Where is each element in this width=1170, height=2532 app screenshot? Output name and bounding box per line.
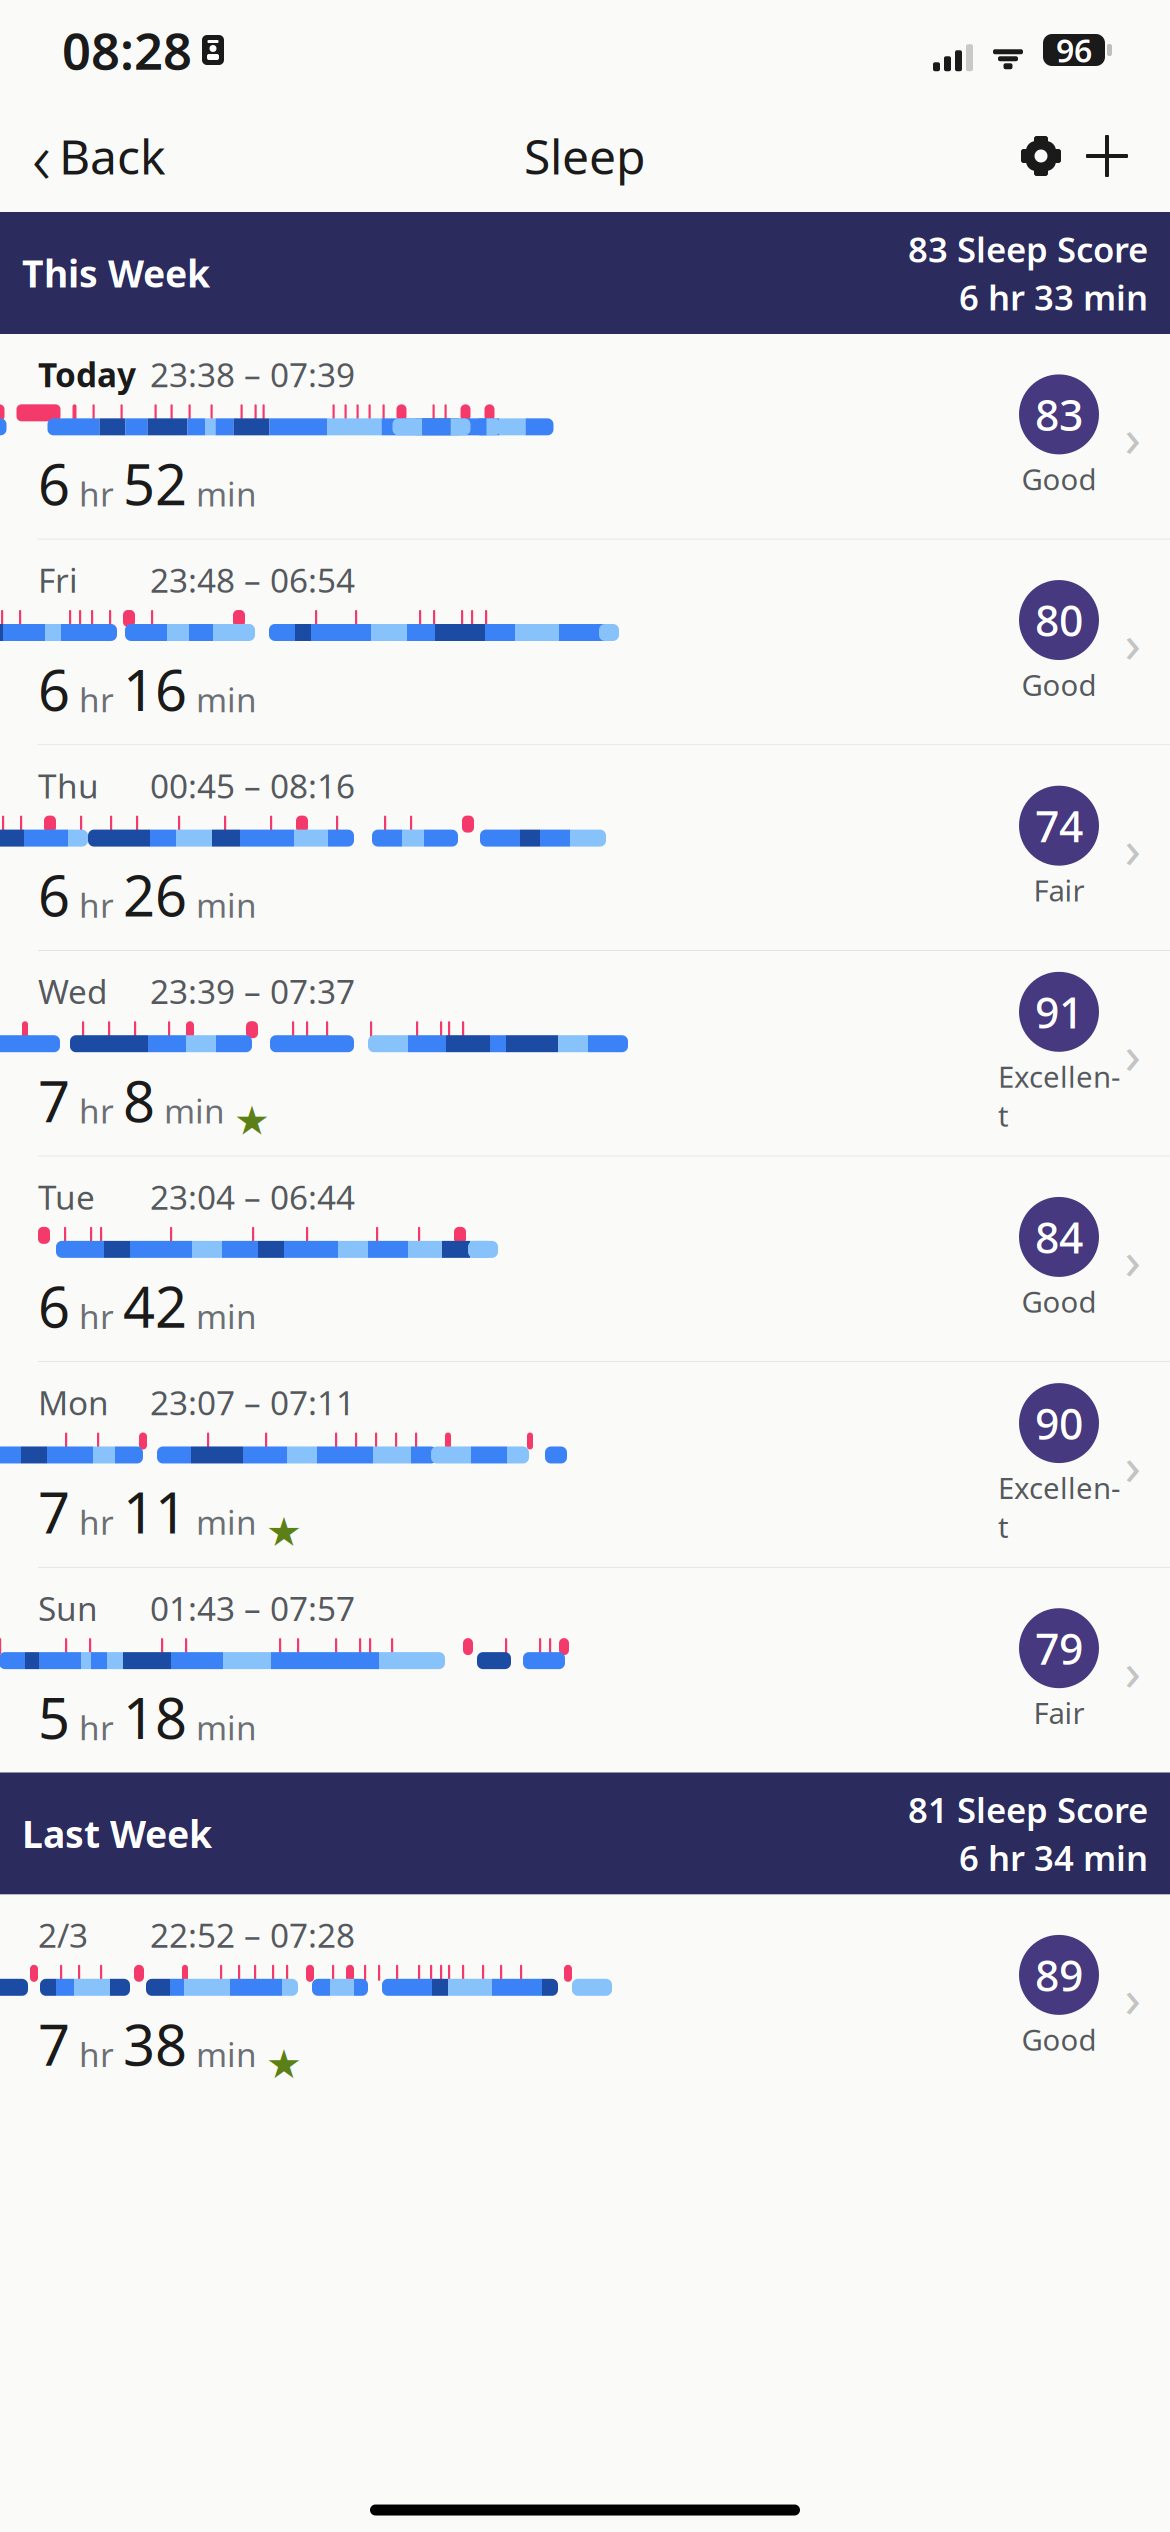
button[interactable]: Add sleep entry [1074, 123, 1140, 189]
staticText: › [1124, 1018, 1141, 1089]
staticText: 23:38 – 07:39 [150, 352, 355, 396]
staticText: 00:45 – 08:16 [150, 763, 355, 808]
staticText: 2/3 [38, 1913, 88, 1957]
staticText: 80 [1035, 592, 1083, 648]
staticText: hr [70, 1705, 123, 1749]
staticText: Excellent [998, 1468, 1120, 1546]
staticText: 74 [1035, 797, 1083, 854]
staticText: 23:48 – 06:54 [150, 558, 355, 602]
staticText: Wed [38, 969, 108, 1013]
staticText: Good [1021, 1282, 1096, 1321]
button[interactable]: Tue [0, 1157, 1170, 1362]
staticText: › [1124, 1635, 1141, 1706]
staticText: 01:43 – 07:57 [150, 1586, 355, 1630]
staticText: › [1124, 1961, 1141, 2032]
staticText: hr [70, 1500, 123, 1544]
staticText: Sun [38, 1586, 98, 1630]
staticText: 81 Sleep Score [908, 1786, 1148, 1832]
staticText: 08:28 [62, 16, 192, 84]
button[interactable]: 2/3 [0, 1895, 1170, 2099]
staticText: ★ [266, 2041, 302, 2087]
staticText: Back [59, 124, 166, 188]
staticText: Fair [1033, 1693, 1084, 1732]
staticText: min [155, 1088, 225, 1133]
staticText: 79 [1035, 1620, 1083, 1677]
staticText: 83 [1035, 386, 1083, 443]
staticText: min [187, 1294, 257, 1338]
button[interactable]: ‹ [22, 102, 176, 210]
staticText: hr [70, 471, 123, 516]
staticText: min [187, 677, 257, 721]
button[interactable]: Mon [0, 1362, 1170, 1568]
staticText: 23:04 – 06:44 [150, 1175, 355, 1219]
staticText: 90 [1035, 1395, 1083, 1451]
staticText: hr [70, 2032, 123, 2076]
staticText: This Week [22, 248, 210, 298]
button[interactable]: Today [0, 334, 1170, 540]
staticText: 7 [38, 1063, 70, 1138]
button[interactable]: Settings [1008, 123, 1074, 189]
staticText: 83 Sleep Score [908, 226, 1148, 272]
staticText: 52 [123, 446, 187, 521]
staticText: Good [1021, 2020, 1096, 2059]
staticText: hr [70, 883, 123, 927]
staticText: min [187, 1705, 257, 1749]
staticText: Excellent [998, 1057, 1120, 1135]
staticText: min [187, 883, 257, 927]
button[interactable]: Fri [0, 540, 1170, 745]
staticText: Good [1021, 665, 1096, 704]
staticText: hr [70, 1294, 123, 1338]
staticText: 6 [38, 652, 70, 726]
staticText: 6 [38, 1269, 70, 1343]
staticText: Last Week [22, 1809, 212, 1858]
staticText: › [1124, 1223, 1141, 1294]
staticText: hr [70, 677, 123, 721]
staticText: 23:07 – 07:11 [150, 1380, 355, 1424]
button[interactable]: Sun [0, 1568, 1170, 1772]
staticText: Mon [38, 1380, 109, 1424]
staticText: Thu [38, 763, 99, 808]
staticText: 11 [123, 1474, 187, 1549]
staticText: Good [1021, 459, 1096, 498]
staticText: 7 [38, 2007, 70, 2081]
staticText: hr [70, 1088, 123, 1133]
staticText: 6 [38, 858, 70, 932]
staticText: 91 [1035, 983, 1083, 1040]
staticText: 6 hr 33 min [959, 274, 1148, 320]
staticText: 23:39 – 07:37 [150, 969, 355, 1013]
staticText: 26 [123, 858, 187, 932]
staticText: Fri [38, 558, 78, 602]
staticText: ★ [234, 1098, 270, 1143]
staticText: min [187, 471, 257, 516]
staticText: ★ [266, 1509, 302, 1555]
staticText: 8 [123, 1063, 155, 1138]
staticText: 38 [123, 2007, 187, 2081]
staticText: 16 [123, 652, 187, 726]
staticText: ‹ [32, 108, 51, 204]
staticText: 6 hr 34 min [959, 1834, 1148, 1880]
staticText: 96 [1056, 29, 1092, 71]
staticText: 5 [38, 1680, 70, 1754]
button[interactable]: Wed [0, 951, 1170, 1157]
staticText: 22:52 – 07:28 [150, 1913, 355, 1957]
staticText: › [1124, 1429, 1141, 1500]
staticText: Sleep [524, 124, 646, 188]
staticText: 6 [38, 446, 70, 521]
staticText: 84 [1035, 1209, 1083, 1265]
staticText: min [187, 2032, 257, 2076]
staticText: 42 [123, 1269, 187, 1343]
staticText: › [1124, 401, 1141, 472]
staticText: › [1124, 812, 1141, 883]
staticText: min [187, 1500, 257, 1544]
staticText: Fair [1033, 871, 1084, 910]
button[interactable]: Thu [0, 745, 1170, 951]
staticText: 89 [1035, 1947, 1083, 2003]
staticText: 18 [123, 1680, 187, 1754]
staticText: Tue [38, 1175, 95, 1219]
staticText: 7 [38, 1474, 70, 1549]
staticText: Today [38, 352, 136, 396]
staticText: › [1124, 607, 1141, 677]
